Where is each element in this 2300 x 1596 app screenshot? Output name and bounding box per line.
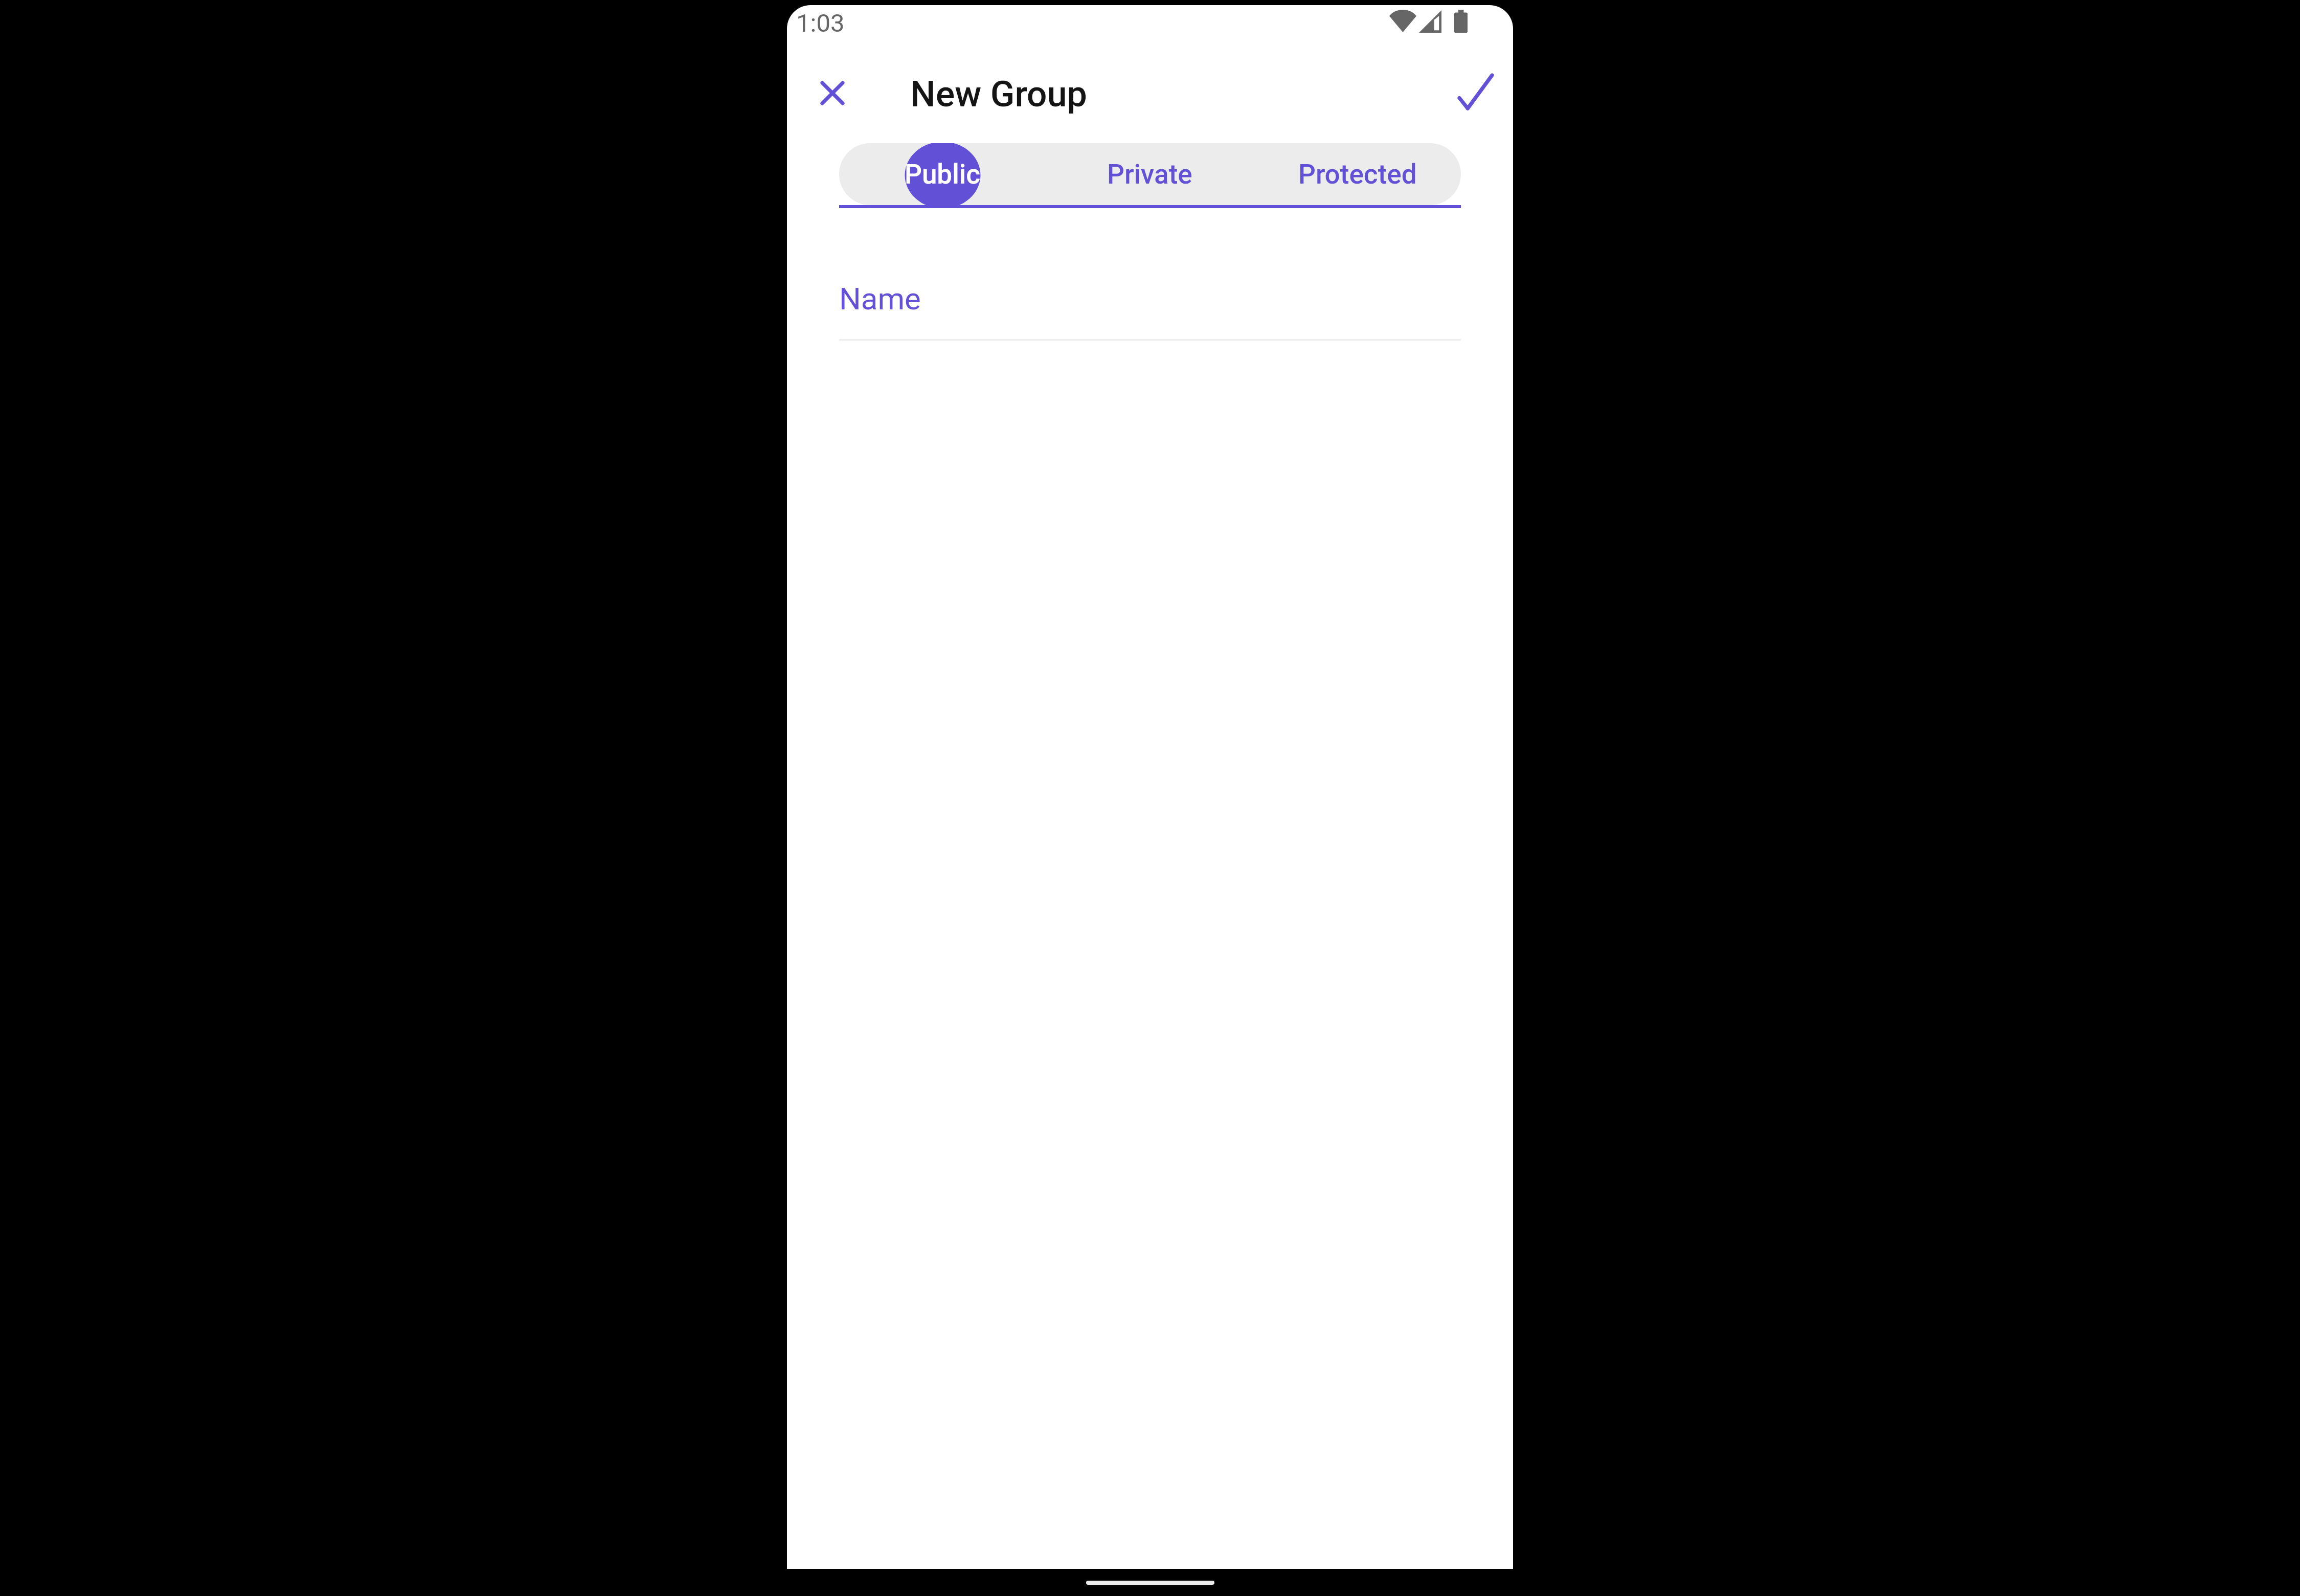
- staticText: New Group: [910, 73, 1087, 115]
- other: Wi-Fi: [1389, 10, 1416, 32]
- button[interactable]: Done: [1440, 56, 1511, 127]
- staticText: Public: [905, 159, 981, 190]
- staticText: Protected: [1298, 159, 1417, 190]
- button[interactable]: Name: [839, 261, 1461, 341]
- other: Mobile signal: [1419, 10, 1441, 33]
- button[interactable]: Close: [797, 57, 868, 128]
- staticText: Private: [1107, 159, 1192, 190]
- button[interactable]: Public: [839, 143, 1046, 205]
- button[interactable]: Private: [1046, 143, 1253, 205]
- button[interactable]: Protected: [1254, 143, 1461, 205]
- staticText: Name: [839, 281, 921, 317]
- other: Battery: [1454, 10, 1468, 33]
- staticText: 1:03: [796, 9, 845, 38]
